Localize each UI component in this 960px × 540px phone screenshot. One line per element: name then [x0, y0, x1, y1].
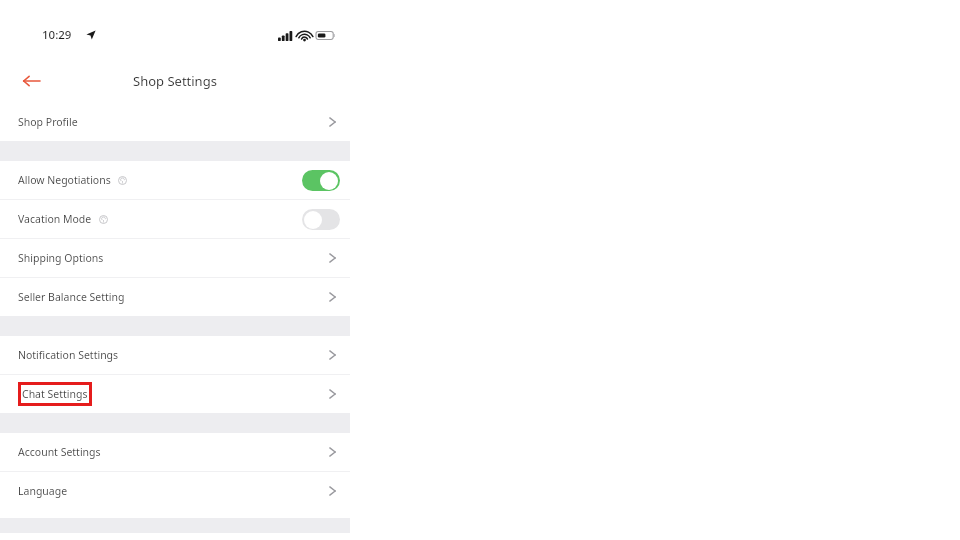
button[interactable]: Allow Negotiations [0, 161, 350, 199]
staticText: Account Settings [18, 445, 101, 459]
staticText: Shop Settings [133, 72, 217, 90]
staticText: Shipping Options [18, 251, 104, 265]
button[interactable]: Chat Settings [0, 375, 350, 413]
button[interactable]: Shop Profile [0, 103, 350, 141]
button[interactable]: Allow Negotiations on [302, 170, 340, 191]
button[interactable]: Language [0, 472, 350, 510]
button[interactable]: Back [16, 66, 46, 96]
button[interactable]: Account Settings [0, 433, 350, 471]
button[interactable]: Vacation Mode off [302, 209, 340, 230]
staticText: Shop Profile [18, 115, 78, 129]
button[interactable]: Seller Balance Setting [0, 278, 350, 316]
staticText: Seller Balance Setting [18, 290, 125, 304]
button[interactable]: Vacation Mode [0, 200, 350, 238]
button[interactable]: Shipping Options [0, 239, 350, 277]
staticText: Notification Settings [18, 348, 119, 362]
staticText: Allow Negotiations [18, 173, 111, 187]
staticText: Language [18, 484, 68, 498]
staticText: Vacation Mode [18, 212, 92, 226]
button[interactable]: Notification Settings [0, 336, 350, 374]
staticText: 10:29 [42, 27, 72, 43]
staticText: Chat Settings [22, 387, 88, 401]
